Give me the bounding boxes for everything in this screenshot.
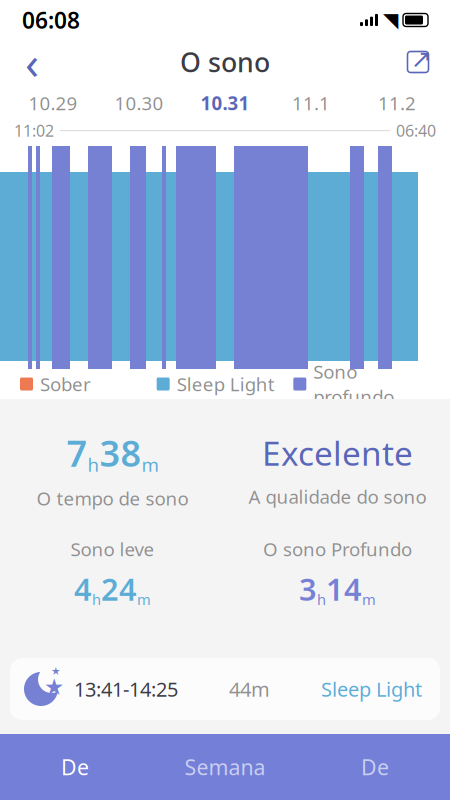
button[interactable]: 11.2 xyxy=(354,86,440,120)
button[interactable]: 10.31 xyxy=(182,86,268,120)
staticText: 14 xyxy=(326,568,362,609)
button[interactable]: 10.30 xyxy=(96,86,182,120)
staticText: 11.1 xyxy=(292,91,330,115)
staticText: 06:40 xyxy=(396,120,436,141)
staticText: 7 xyxy=(66,429,87,477)
staticText: De xyxy=(361,753,389,781)
staticText: ◥ xyxy=(383,9,398,31)
staticText: 11.2 xyxy=(378,91,416,115)
staticText: h xyxy=(87,452,99,477)
staticText: 10.31 xyxy=(200,91,249,115)
staticText: Sono profundo xyxy=(313,359,394,409)
staticText: Excelente xyxy=(262,431,413,475)
staticText: ★ xyxy=(51,665,61,677)
staticText: 10.29 xyxy=(28,91,77,115)
button[interactable]: Back xyxy=(10,40,54,84)
staticText: 11:02 xyxy=(14,120,54,141)
button[interactable]: 10.29 xyxy=(10,86,96,120)
staticText: Sleep Light xyxy=(177,372,275,396)
staticText: 13:41-14:25 xyxy=(74,676,178,702)
staticText: O sono Profundo xyxy=(263,537,412,561)
staticText: ★ xyxy=(44,674,64,700)
staticText: 06:08 xyxy=(22,5,80,35)
staticText: Semana xyxy=(184,753,265,781)
staticText: 10.30 xyxy=(114,91,163,115)
staticText: 38 xyxy=(99,429,141,477)
staticText: De xyxy=(61,753,89,781)
staticText: O tempo de sono xyxy=(36,486,188,511)
button[interactable]: De xyxy=(300,734,450,800)
staticText: ↗ xyxy=(410,45,431,73)
button[interactable]: 11.1 xyxy=(268,86,354,120)
staticText: Sober xyxy=(40,372,91,396)
staticText: h xyxy=(317,590,326,609)
staticText: A qualidade do sono xyxy=(248,484,426,509)
staticText: O sono xyxy=(180,44,270,80)
staticText: m xyxy=(137,590,151,609)
staticText: Sono leve xyxy=(70,537,154,561)
button[interactable]: De xyxy=(0,734,150,800)
staticText: 4 xyxy=(74,568,92,609)
staticText: 3 xyxy=(299,568,317,609)
button[interactable]: Semana xyxy=(150,734,300,800)
staticText: 24 xyxy=(101,568,137,609)
staticText: ‹ xyxy=(25,32,39,92)
button[interactable]: ★ xyxy=(0,658,450,720)
button[interactable]: Share xyxy=(396,40,440,84)
staticText: m xyxy=(362,590,376,609)
staticText: m xyxy=(141,452,158,477)
staticText: 44m xyxy=(229,676,270,702)
staticText: h xyxy=(92,590,101,609)
staticText: Sleep Light xyxy=(321,676,422,702)
